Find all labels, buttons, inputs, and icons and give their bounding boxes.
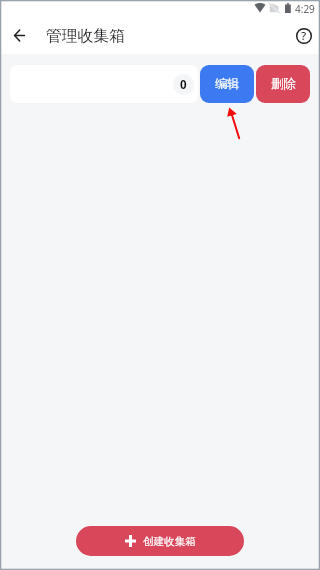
staticText: ? <box>301 28 307 44</box>
staticText: 0 <box>180 77 187 93</box>
button[interactable]: 编辑 <box>200 65 254 103</box>
button[interactable]: 0 <box>10 65 198 103</box>
button[interactable]: 删除 <box>256 65 310 103</box>
staticText: 管理收集箱 <box>46 26 125 46</box>
staticText: 删除 <box>271 76 296 91</box>
button[interactable]: Help <box>292 24 316 48</box>
staticText: 4:29 <box>295 2 315 16</box>
staticText: 创建收集箱 <box>143 535 196 548</box>
button[interactable]: 创建收集箱 <box>76 526 244 556</box>
button[interactable]: Back <box>7 24 31 48</box>
staticText: 编辑 <box>215 76 240 91</box>
